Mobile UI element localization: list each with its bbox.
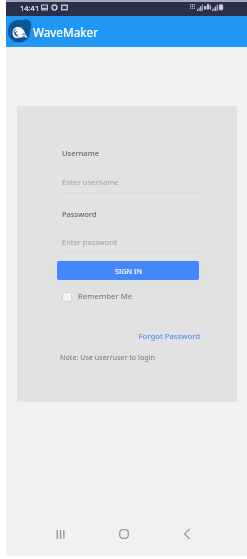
- staticText: Enter password: [62, 237, 117, 247]
- staticText: Enter username: [62, 177, 119, 187]
- button[interactable]: Recent apps: [46, 520, 74, 548]
- staticText: Remember Me: [78, 291, 133, 302]
- staticText: 14:41: [20, 3, 40, 13]
- staticText: Password: [62, 209, 97, 219]
- staticText: WaveMaker: [33, 24, 99, 40]
- staticText: SIGN IN: [115, 266, 142, 276]
- button[interactable]: WaveMaker home: [7, 18, 32, 43]
- button[interactable]: Back: [173, 520, 201, 548]
- button[interactable]: SIGN IN: [57, 261, 199, 280]
- button[interactable]: Remember Me: [62, 290, 133, 303]
- button[interactable]: Home: [110, 520, 138, 548]
- staticText: Forgot Password: [62, 331, 200, 342]
- button[interactable]: Forgot Password: [62, 331, 200, 342]
- staticText: Username: [62, 148, 100, 158]
- staticText: Note: Use user/user to login: [60, 352, 155, 362]
